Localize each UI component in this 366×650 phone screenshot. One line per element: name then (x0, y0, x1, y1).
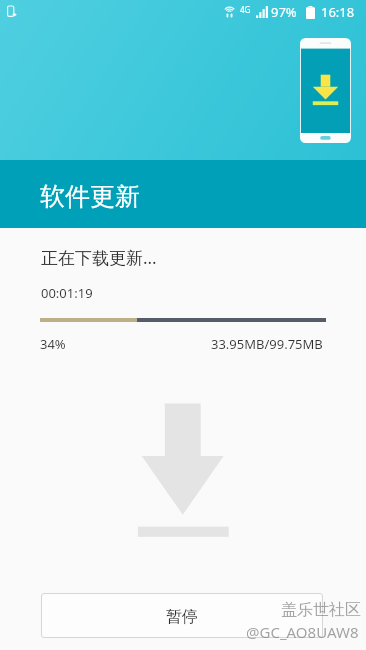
staticText: 00:01:19 (41, 284, 93, 302)
button[interactable]: 暂停 (41, 593, 323, 638)
staticText: @GC_AO8UAW8 (246, 622, 359, 642)
staticText: 正在下载更新... (41, 246, 157, 269)
staticText: 16:18 (321, 3, 355, 21)
staticText: 33.95MB/99.75MB (211, 335, 323, 353)
other: Software update notification (7, 6, 17, 18)
staticText: 软件更新 (40, 181, 140, 212)
staticText: 盖乐世社区 (281, 600, 361, 620)
staticText: 97% (271, 3, 297, 21)
staticText: 暂停 (166, 607, 198, 627)
staticText: 4G (240, 4, 251, 15)
staticText: 34% (40, 335, 66, 353)
